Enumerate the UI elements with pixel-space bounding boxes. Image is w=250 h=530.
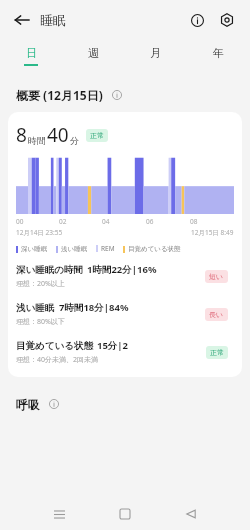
staticText: 40 <box>47 122 69 148</box>
button[interactable]: 目覚めている状態 <box>16 339 234 365</box>
staticText: 深い睡眠の時間 <box>16 264 83 276</box>
staticText: 週 <box>88 46 99 60</box>
button[interactable]: Settings <box>212 5 242 35</box>
button[interactable]: 月 <box>124 40 187 72</box>
button[interactable]: 深い睡眠の時間 <box>16 263 234 289</box>
button[interactable]: Information <box>182 5 212 35</box>
staticText: 正常 <box>210 348 224 357</box>
staticText: 正常 <box>90 131 104 140</box>
staticText: 12月14日 23:55 <box>16 228 63 237</box>
button[interactable]: 8 <box>8 112 242 377</box>
button[interactable]: Back <box>8 6 36 34</box>
staticText: 分 <box>70 135 79 146</box>
staticText: 目覚めている状態 <box>16 340 93 352</box>
staticText: REM <box>101 244 115 253</box>
staticText: 時間 <box>28 135 46 146</box>
button[interactable]: Information <box>108 86 126 104</box>
button[interactable]: 浅い睡眠 <box>16 301 234 327</box>
staticText: 08 <box>190 217 198 226</box>
staticText: 7時間18分|84% <box>59 301 129 314</box>
button[interactable]: 年 <box>187 40 250 72</box>
staticText: 理想：40分未満、2回未満 <box>16 355 99 365</box>
staticText: 1時間22分|16% <box>87 263 157 276</box>
staticText: 理想：80%以下 <box>16 317 65 327</box>
staticText: 12月15日 8:49 <box>191 228 234 237</box>
staticText: 長い <box>209 310 224 319</box>
staticText: 浅い睡眠 <box>16 302 55 314</box>
button[interactable]: Recents <box>46 501 72 527</box>
staticText: 00 <box>16 217 24 226</box>
staticText: 04 <box>102 217 110 226</box>
staticText: 深い睡眠 <box>21 245 48 253</box>
staticText: 目覚めている状態 <box>128 245 181 253</box>
staticText: 日 <box>26 46 37 60</box>
staticText: 短い <box>209 272 224 281</box>
button[interactable]: Home <box>112 501 138 527</box>
button[interactable]: Back <box>178 501 204 527</box>
staticText: 月 <box>150 46 161 60</box>
staticText: 年 <box>213 46 224 60</box>
staticText: 睡眠 <box>40 12 66 28</box>
staticText: 理想：20%以上 <box>16 279 65 289</box>
staticText: 8 <box>16 122 27 148</box>
staticText: 15分|2 <box>97 339 129 352</box>
staticText: 浅い睡眠 <box>61 245 88 253</box>
staticText: 概要 (12月15日) <box>16 87 103 103</box>
staticText: 06 <box>146 217 154 226</box>
button[interactable]: 日 <box>0 40 62 72</box>
staticText: 呼吸 <box>16 397 40 412</box>
button[interactable]: Information <box>45 395 63 413</box>
button[interactable]: 週 <box>62 40 124 72</box>
staticText: 02 <box>59 217 67 226</box>
